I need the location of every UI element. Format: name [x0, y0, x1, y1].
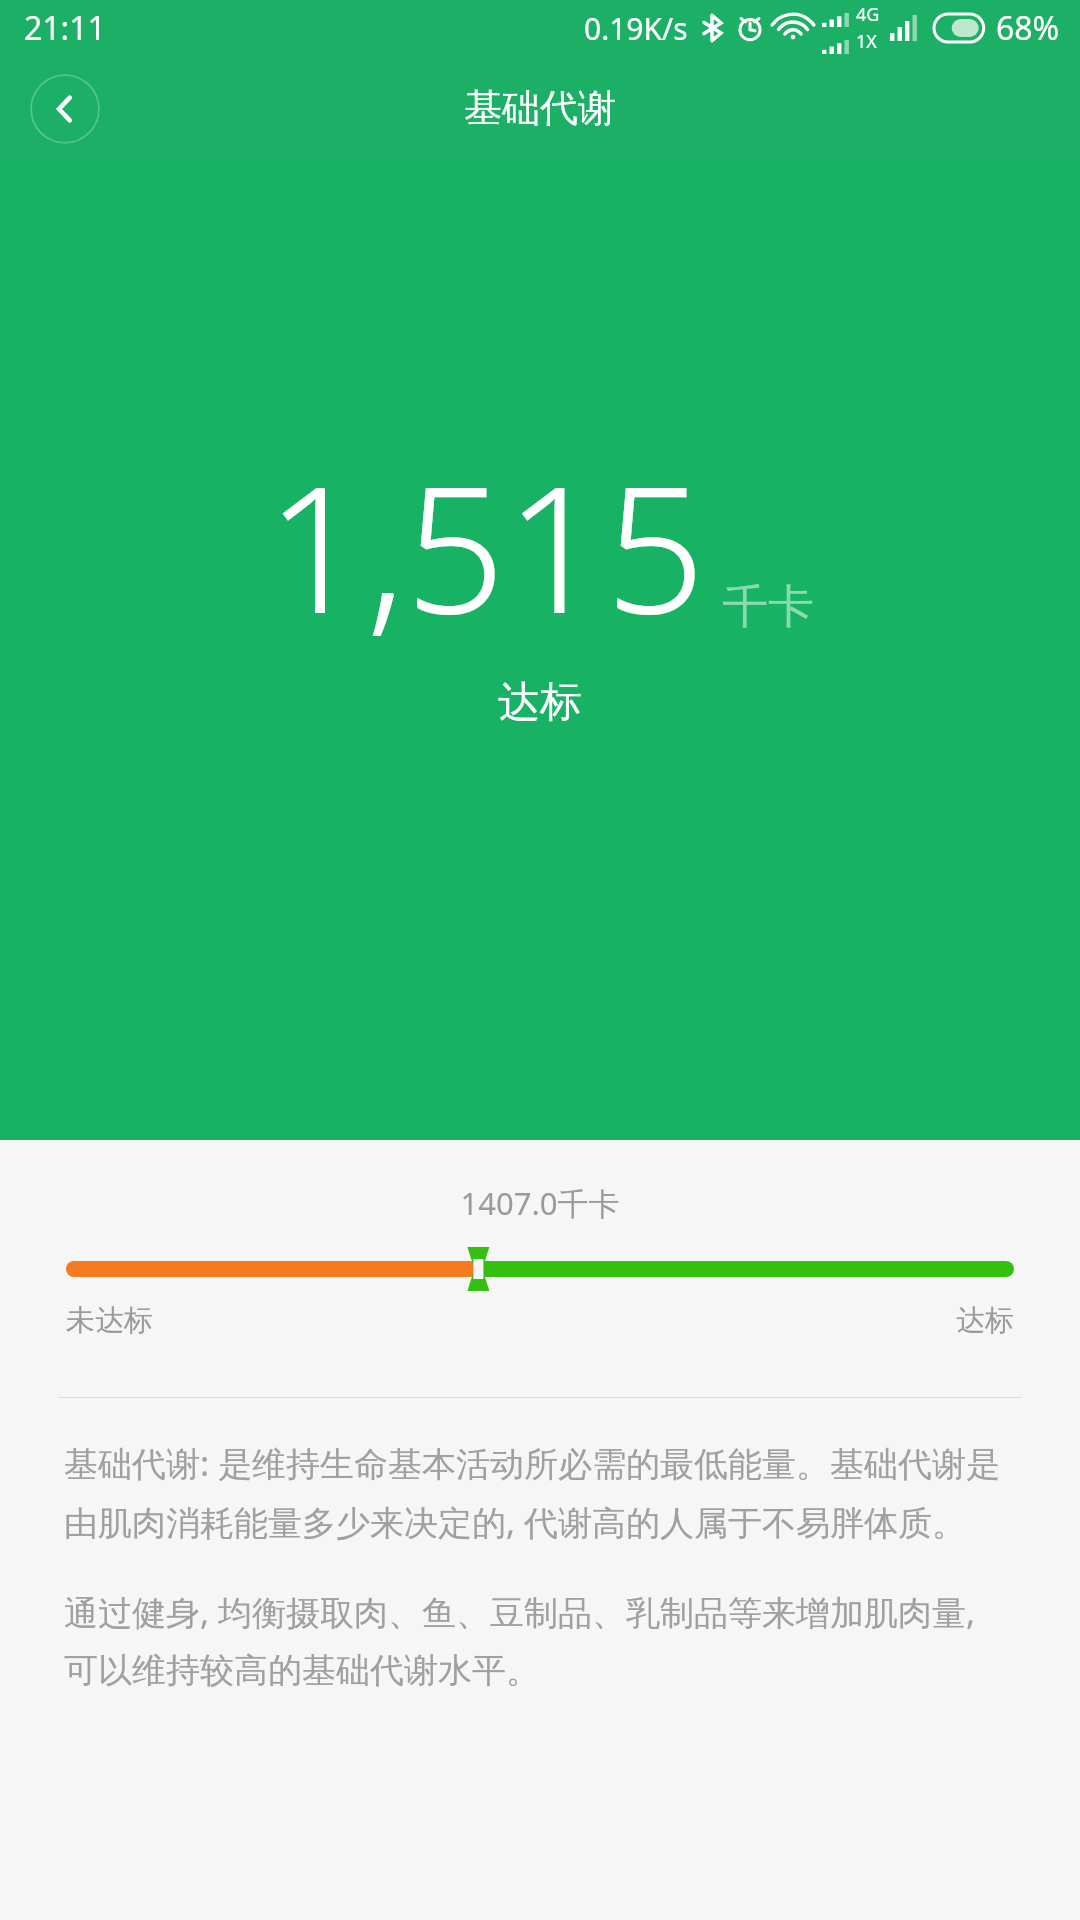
staticText: 达标	[498, 676, 582, 729]
staticText: 1X	[856, 29, 877, 54]
staticText: 68%	[996, 6, 1060, 50]
staticText: 1407.0千卡	[0, 1182, 1080, 1224]
staticText: 4G	[856, 2, 880, 27]
staticText: 达标	[956, 1302, 1014, 1339]
button[interactable]: Back	[30, 74, 100, 144]
staticText: 基础代谢: 是维持生命基本活动所必需的最低能量。基础代谢是由肌肉消耗能量多少来决…	[64, 1440, 1016, 1545]
staticText: 1,515	[266, 426, 706, 664]
staticText: 基础代谢	[464, 84, 616, 132]
staticText: 通过健身, 均衡摄取肉、鱼、豆制品、乳制品等来增加肌肉量, 可以维持较高的基础代…	[64, 1589, 1016, 1692]
staticText: 0.19K/s	[584, 8, 688, 49]
staticText: 未达标	[66, 1302, 153, 1339]
staticText: 21:11	[24, 6, 106, 50]
staticText: 千卡	[722, 578, 814, 636]
